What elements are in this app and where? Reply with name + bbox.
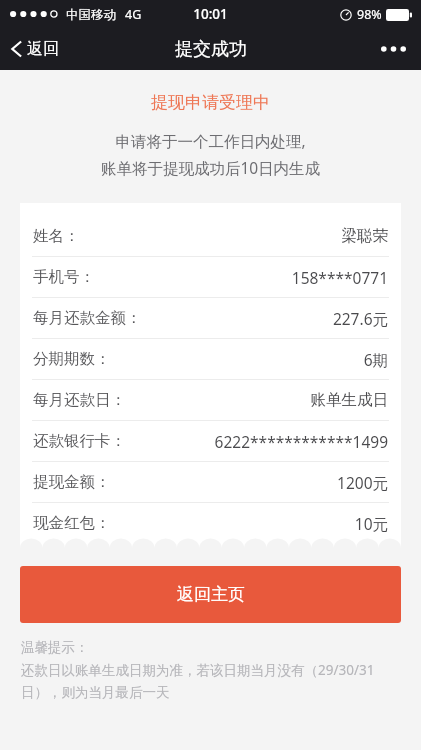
staticText: 还款银行卡： bbox=[33, 431, 126, 451]
staticText: 提交成功 bbox=[175, 38, 247, 61]
button[interactable]: 返回 bbox=[0, 28, 71, 70]
button[interactable]: More options bbox=[366, 28, 421, 70]
staticText: 227.6元 bbox=[332, 308, 388, 329]
staticText: 申请将于一个工作日内处理, bbox=[0, 130, 421, 151]
staticText: 手机号： bbox=[33, 267, 95, 287]
button[interactable]: 返回主页 bbox=[20, 566, 401, 623]
staticText: 账单将于提现成功后10日内生成 bbox=[0, 157, 421, 178]
staticText: 姓名： bbox=[33, 226, 80, 246]
staticText: 返回 bbox=[27, 39, 59, 59]
staticText: 每月还款金额： bbox=[33, 308, 142, 328]
staticText: 提现金额： bbox=[33, 472, 111, 492]
staticText: 10元 bbox=[354, 513, 388, 534]
staticText: 分期期数： bbox=[33, 349, 111, 369]
staticText: 现金红包： bbox=[33, 513, 111, 533]
staticText: 账单生成日 bbox=[310, 390, 388, 410]
staticText: 6期 bbox=[363, 349, 388, 370]
staticText: 1200元 bbox=[337, 472, 388, 493]
staticText: 4G bbox=[125, 6, 142, 23]
staticText: 每月还款日： bbox=[33, 390, 126, 410]
staticText: 中国移动 bbox=[66, 7, 116, 23]
staticText: 6222************1499 bbox=[214, 431, 388, 452]
staticText: 提现申请受理中 bbox=[0, 92, 421, 113]
staticText: 温馨提示： bbox=[21, 639, 89, 656]
staticText: 还款日以账单生成日期为准，若该日期当月没有（29/30/31日），则为当月最后一… bbox=[21, 661, 400, 701]
staticText: 158****0771 bbox=[291, 267, 388, 288]
staticText: 返回主页 bbox=[177, 584, 245, 605]
staticText: 98% bbox=[357, 6, 382, 23]
staticText: 10:01 bbox=[193, 5, 228, 23]
staticText: 梁聪荣 bbox=[341, 226, 388, 246]
